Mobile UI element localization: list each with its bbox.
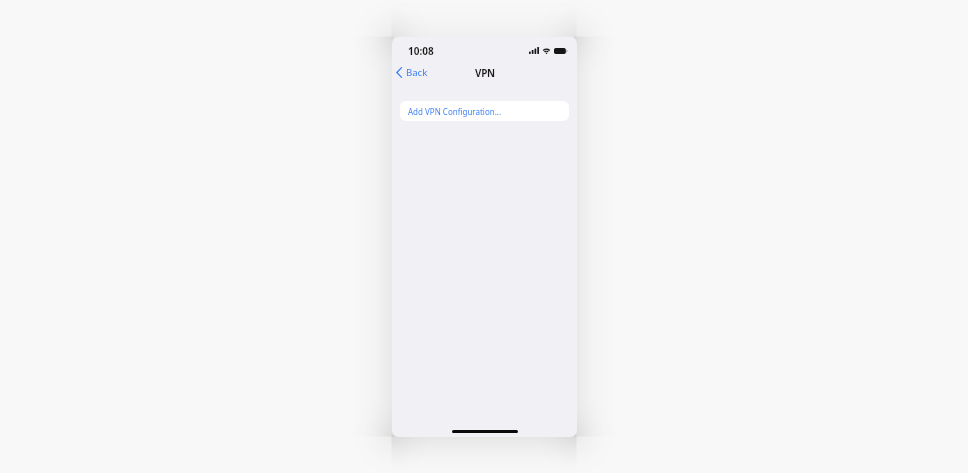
other: Battery full — [554, 48, 568, 54]
staticText: Add VPN Configuration... — [408, 106, 502, 117]
staticText: Back — [406, 66, 428, 79]
other: Back — [396, 67, 402, 78]
staticText: 10:08 — [408, 44, 434, 58]
button[interactable]: Add VPN Configuration... — [400, 101, 569, 121]
other: Cellular signal strength — [529, 47, 539, 54]
other: Wi-Fi — [542, 47, 551, 54]
button[interactable]: Back — [392, 63, 434, 82]
staticText: VPN — [475, 66, 495, 79]
